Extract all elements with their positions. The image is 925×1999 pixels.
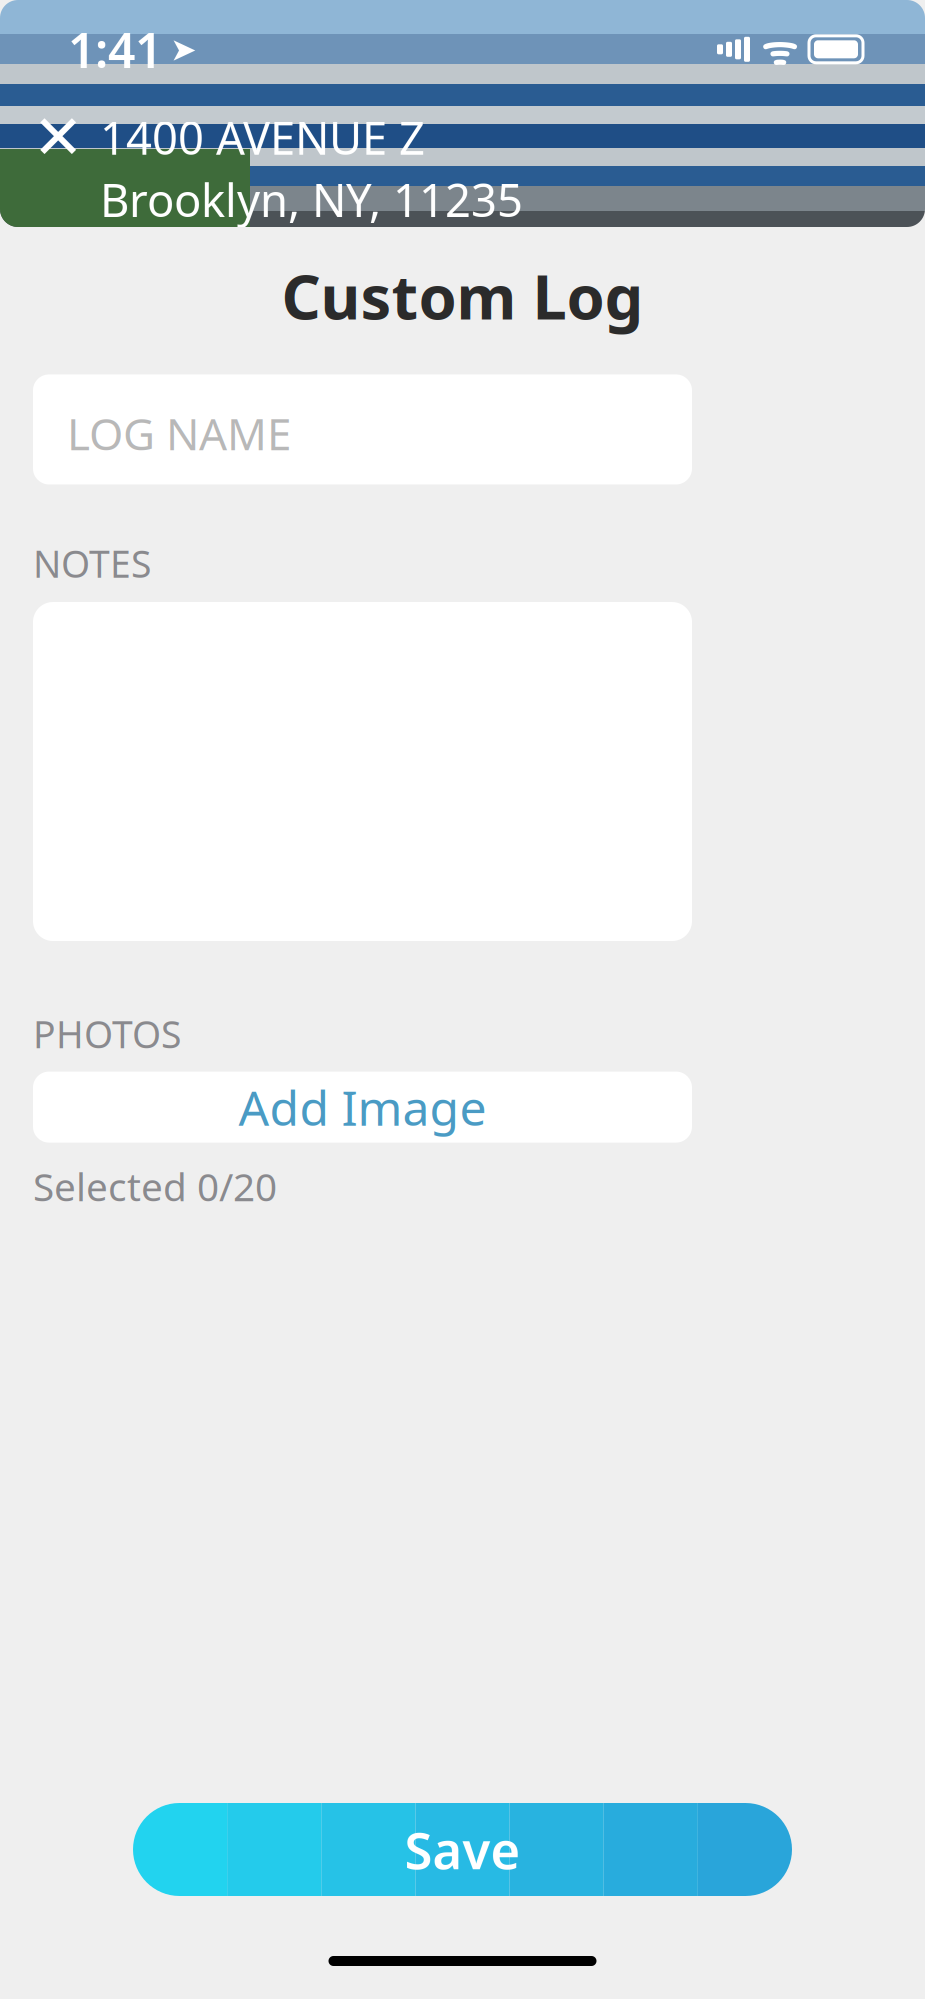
staticText: 1:41 — [68, 17, 162, 81]
staticText: LOG NAME — [67, 404, 291, 462]
staticText: Brooklyn, NY, 11235 — [100, 169, 523, 230]
staticText: NOTES — [33, 538, 151, 588]
staticText: PHOTOS — [33, 1009, 181, 1059]
staticText: ✕ — [32, 102, 83, 172]
staticText: 1400 AVENUE Z — [100, 107, 425, 167]
button[interactable]: Close — [22, 101, 94, 173]
staticText: Selected 0/20 — [33, 1161, 277, 1212]
staticText: ᯤ — [761, 23, 798, 76]
staticText: Save — [404, 1816, 520, 1883]
staticText: Custom Log — [281, 255, 643, 336]
button[interactable]: Save — [133, 1803, 792, 1896]
staticText: ➤ — [170, 31, 197, 67]
button[interactable]: Add Image — [33, 1072, 692, 1143]
staticText: Add Image — [238, 1075, 486, 1139]
